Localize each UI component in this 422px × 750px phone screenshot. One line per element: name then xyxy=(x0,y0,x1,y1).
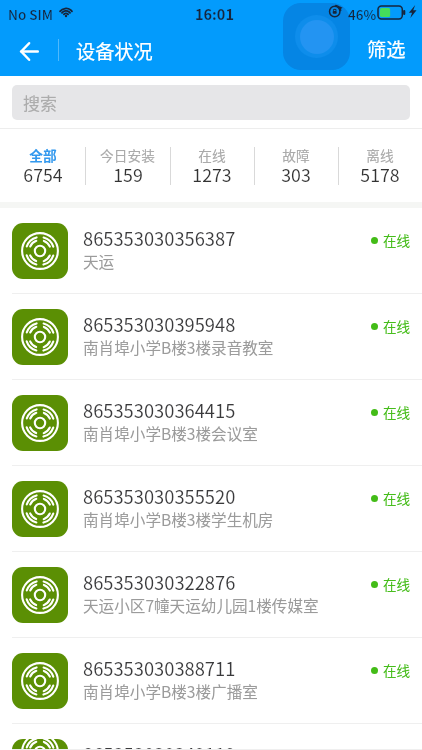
staticText: 南肖埠小学B楼3楼学生机房 xyxy=(83,508,274,531)
staticText: 46% xyxy=(348,4,377,24)
staticText: 在线 xyxy=(198,145,226,165)
button[interactable]: 故障 xyxy=(254,129,338,202)
staticText: 6754 xyxy=(23,161,63,187)
staticText: 865353030388711 xyxy=(83,655,236,681)
staticText: 在线 xyxy=(383,660,411,680)
staticText: 在线 xyxy=(383,488,411,508)
staticText: 在线 xyxy=(383,574,411,594)
button[interactable]: 离线 xyxy=(338,129,422,202)
staticText: 今日安装 xyxy=(100,145,155,165)
staticText: 159 xyxy=(113,161,143,187)
staticText: 筛选 xyxy=(367,35,406,63)
staticText: 搜索 xyxy=(23,90,57,115)
staticText: 865353030349119 xyxy=(83,741,236,750)
staticText: 865353030355520 xyxy=(83,483,236,509)
staticText: 故障 xyxy=(282,145,310,165)
button[interactable]: 865353030364415 xyxy=(0,380,422,466)
staticText: 天运 xyxy=(83,250,115,273)
button[interactable]: 返回 xyxy=(4,26,54,76)
button[interactable]: 865353030349119 xyxy=(0,724,422,750)
staticText: 5178 xyxy=(360,161,400,187)
staticText: 在线 xyxy=(383,316,411,336)
staticText: 离线 xyxy=(366,145,394,165)
staticText: 1273 xyxy=(192,161,232,187)
button[interactable]: 全部 xyxy=(0,129,85,202)
staticText: 全部 xyxy=(29,145,57,165)
button[interactable]: 865353030395948 xyxy=(0,294,422,380)
staticText: 在线 xyxy=(383,402,411,422)
button[interactable]: 865353030388711 xyxy=(0,638,422,724)
staticText: 在线 xyxy=(383,746,411,750)
staticText: 天运小区7幢天运幼儿园1楼传媒室 xyxy=(83,594,319,617)
button[interactable]: 865353030356387 xyxy=(0,208,422,294)
other: AssistiveTouch xyxy=(283,3,350,70)
staticText: 设备状况 xyxy=(76,37,153,65)
button[interactable]: 今日安装 xyxy=(85,129,170,202)
staticText: 303 xyxy=(281,161,311,187)
staticText: 南肖埠小学B楼3楼会议室 xyxy=(83,422,258,445)
staticText: 865353030364415 xyxy=(83,397,236,423)
button[interactable]: 865353030322876 xyxy=(0,552,422,638)
button[interactable]: 在线 xyxy=(170,129,254,202)
button[interactable]: 搜索 xyxy=(12,85,410,120)
staticText: 南肖埠小学B楼3楼广播室 xyxy=(83,680,258,703)
button[interactable]: 筛选 xyxy=(355,26,417,72)
staticText: No SIM xyxy=(8,4,53,24)
staticText: 865353030395948 xyxy=(83,311,236,337)
staticText: 南肖埠小学B楼3楼录音教室 xyxy=(83,336,274,359)
staticText: 865353030356387 xyxy=(83,225,236,251)
staticText: 865353030322876 xyxy=(83,569,236,595)
button[interactable]: 865353030355520 xyxy=(0,466,422,552)
staticText: 16:01 xyxy=(195,3,234,24)
staticText: 在线 xyxy=(383,230,411,250)
